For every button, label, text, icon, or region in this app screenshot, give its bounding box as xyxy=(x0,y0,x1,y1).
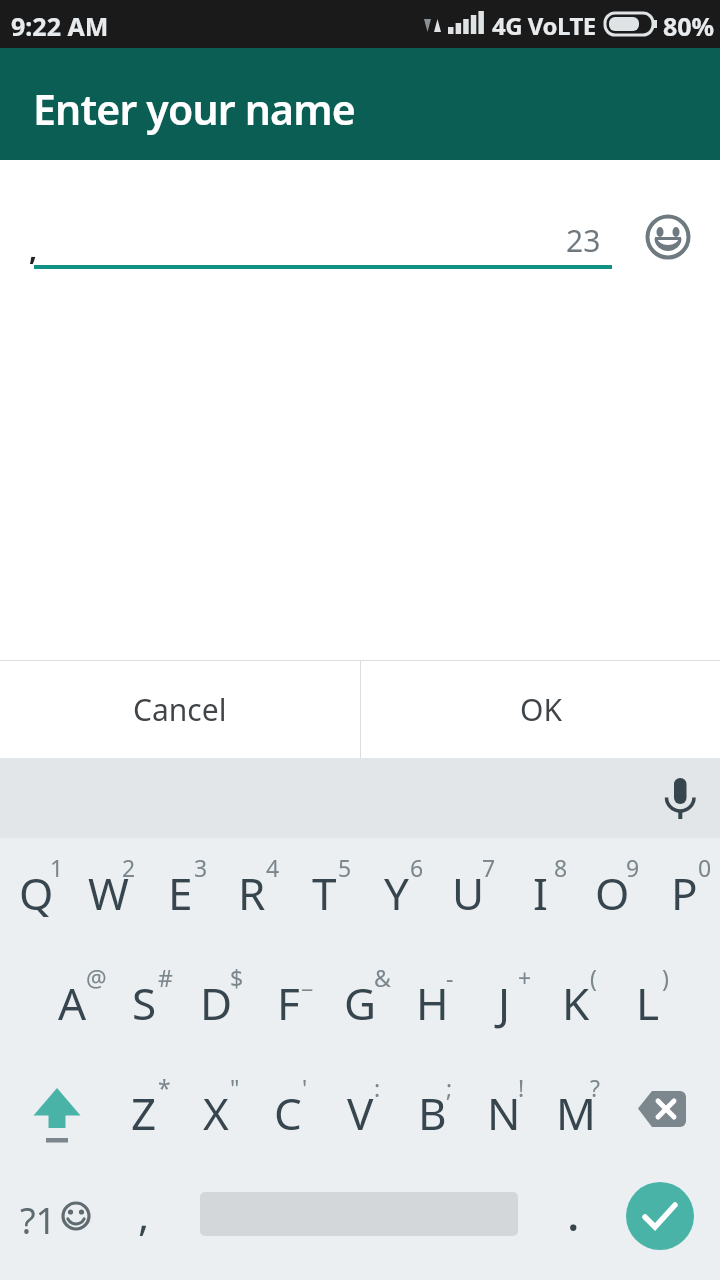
button[interactable]: I xyxy=(504,838,576,948)
staticText: I xyxy=(533,863,548,923)
staticText: ( xyxy=(590,962,597,993)
button[interactable]: C xyxy=(252,1058,324,1168)
button[interactable] xyxy=(660,774,700,822)
staticText: Enter your name xyxy=(33,81,355,137)
staticText: H xyxy=(416,973,449,1033)
staticText: P xyxy=(671,863,698,923)
staticText: & xyxy=(374,962,391,993)
staticText: K xyxy=(562,973,590,1033)
button[interactable]: . xyxy=(540,1168,612,1280)
button[interactable] xyxy=(0,1058,108,1168)
staticText: 9 xyxy=(626,852,640,883)
button[interactable]: W xyxy=(72,838,144,948)
button[interactable]: M xyxy=(540,1058,612,1168)
button[interactable] xyxy=(626,1182,694,1250)
staticText: J xyxy=(498,973,511,1033)
button[interactable]: K xyxy=(540,948,612,1058)
staticText: # xyxy=(158,962,173,993)
button[interactable]: G xyxy=(324,948,396,1058)
staticText: Z xyxy=(131,1083,157,1143)
staticText: V xyxy=(347,1083,374,1143)
staticText: 9:22 AM xyxy=(11,9,109,43)
staticText: N xyxy=(487,1083,521,1143)
button[interactable]: H xyxy=(396,948,468,1058)
staticText: ? xyxy=(590,1072,600,1103)
button[interactable]: L xyxy=(612,948,684,1058)
button[interactable]: X xyxy=(180,1058,252,1168)
staticText: T xyxy=(312,863,337,923)
staticText: S xyxy=(132,973,157,1033)
staticText: ; xyxy=(446,1072,453,1103)
staticText: 80% xyxy=(663,9,715,43)
staticText: Y xyxy=(384,863,409,923)
staticText: A xyxy=(58,973,87,1033)
staticText: R xyxy=(238,863,266,923)
staticText: , xyxy=(138,1186,150,1243)
staticText: C xyxy=(274,1083,302,1143)
staticText: F xyxy=(277,973,300,1033)
button[interactable]: U xyxy=(432,838,504,948)
staticText: * xyxy=(158,1072,171,1103)
button[interactable]: E xyxy=(144,838,216,948)
staticText: $ xyxy=(230,962,244,993)
staticText: D xyxy=(200,973,233,1033)
staticText: ?1 xyxy=(20,1196,57,1245)
staticText: + xyxy=(518,962,532,993)
button[interactable]: V xyxy=(324,1058,396,1168)
staticText: - xyxy=(446,962,454,993)
button[interactable]: N xyxy=(468,1058,540,1168)
button[interactable]: F xyxy=(252,948,324,1058)
staticText: 4 xyxy=(266,852,280,883)
staticText: G xyxy=(344,973,377,1033)
staticText: O xyxy=(595,863,630,923)
button[interactable]: T xyxy=(288,838,360,948)
staticText: : xyxy=(374,1072,381,1103)
button[interactable] xyxy=(645,214,691,260)
staticText: @ xyxy=(86,962,107,993)
staticText: ' xyxy=(302,1072,308,1103)
button[interactable]: R xyxy=(216,838,288,948)
staticText: X xyxy=(203,1083,229,1143)
staticText: 2 xyxy=(122,852,136,883)
button[interactable]: OK xyxy=(361,661,720,758)
staticText: L xyxy=(636,973,660,1033)
staticText: B xyxy=(418,1083,447,1143)
button[interactable]: ?1 xyxy=(0,1168,110,1280)
staticText: 1 xyxy=(50,852,64,883)
button[interactable]: J xyxy=(468,948,540,1058)
button[interactable]: , xyxy=(110,1168,180,1280)
staticText: Q xyxy=(19,863,54,923)
staticText: Cancel xyxy=(133,689,227,730)
staticText: _ xyxy=(302,962,313,993)
staticText: 3 xyxy=(194,852,208,883)
staticText: ! xyxy=(518,1072,525,1103)
staticText: 6 xyxy=(410,852,424,883)
staticText: E xyxy=(168,863,193,923)
staticText: 8 xyxy=(554,852,568,883)
staticText: , xyxy=(29,230,37,268)
staticText: ) xyxy=(662,962,669,993)
staticText: 5 xyxy=(338,852,352,883)
button[interactable]: S xyxy=(108,948,180,1058)
staticText: 0 xyxy=(698,852,712,883)
staticText: . xyxy=(567,1182,580,1245)
staticText: W xyxy=(88,863,129,923)
button[interactable]: O xyxy=(576,838,648,948)
staticText: M xyxy=(556,1083,596,1143)
staticText: 7 xyxy=(482,852,496,883)
button[interactable]: Y xyxy=(360,838,432,948)
button[interactable] xyxy=(612,1058,720,1168)
button[interactable]: P xyxy=(648,838,720,948)
button[interactable]: B xyxy=(396,1058,468,1168)
button[interactable] xyxy=(180,1168,540,1280)
button[interactable]: Cancel xyxy=(0,661,360,758)
button[interactable]: Z xyxy=(108,1058,180,1168)
button[interactable]: A xyxy=(36,948,108,1058)
staticText: " xyxy=(230,1072,240,1103)
staticText: U xyxy=(452,863,485,923)
staticText: 4G VoLTE xyxy=(492,9,596,42)
button[interactable]: D xyxy=(180,948,252,1058)
staticText: OK xyxy=(520,689,562,730)
button[interactable]: Q xyxy=(0,838,72,948)
staticText: 23 xyxy=(566,220,601,261)
